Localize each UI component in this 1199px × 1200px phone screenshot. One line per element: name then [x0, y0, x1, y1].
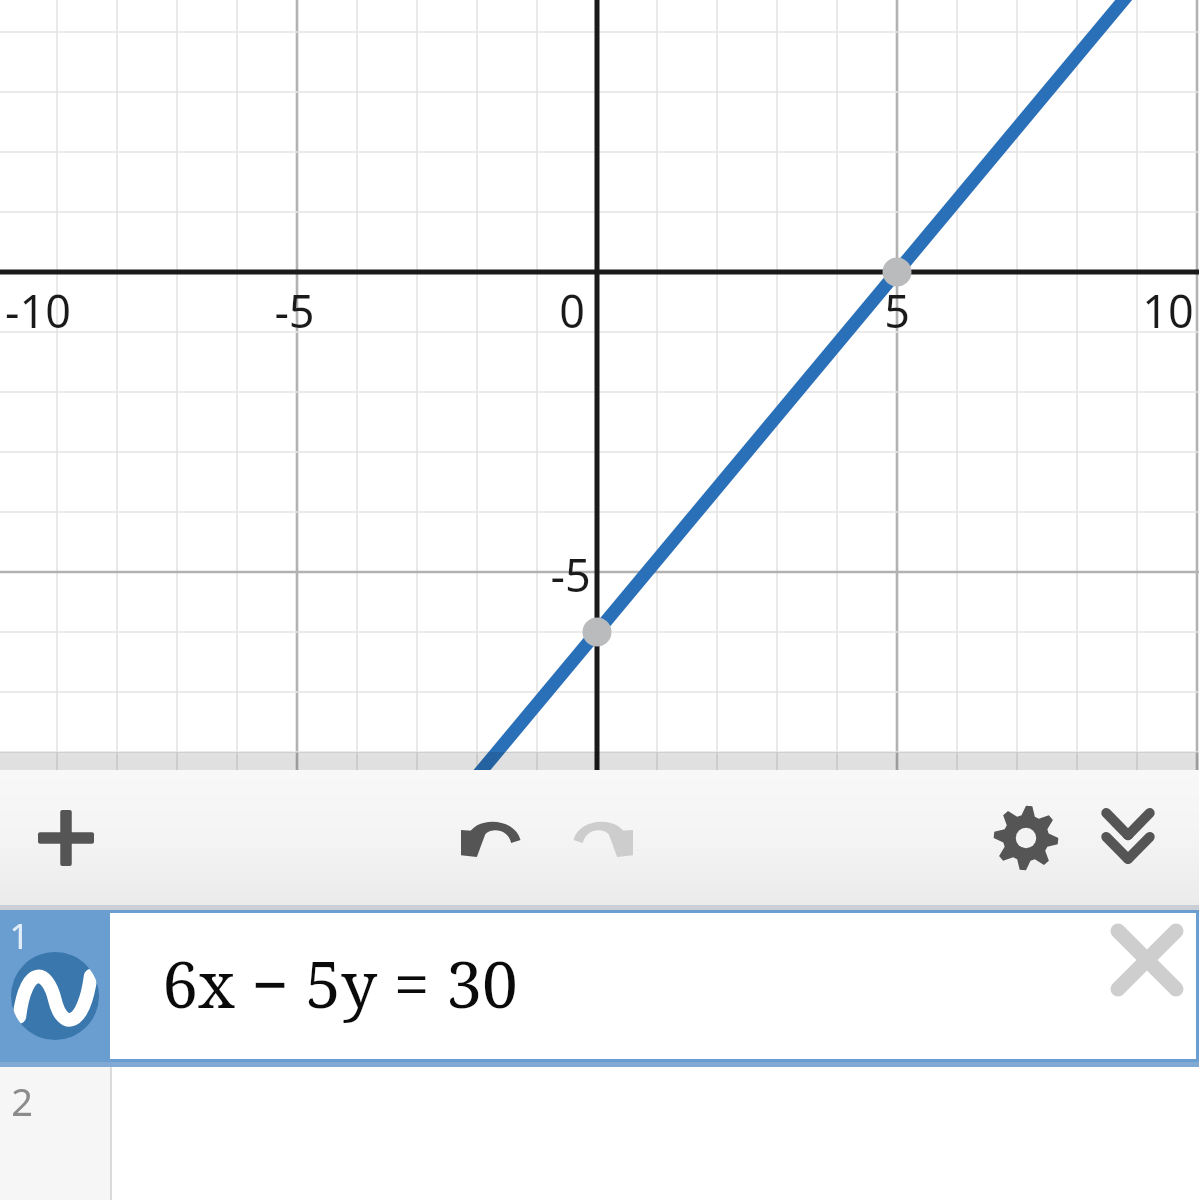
- staticText: 5: [884, 280, 910, 340]
- button[interactable]: 2: [0, 1067, 1199, 1200]
- button[interactable]: 1: [0, 910, 1199, 1062]
- staticText: -10: [5, 280, 71, 340]
- staticText: 1: [9, 912, 30, 960]
- button[interactable]: Redo: [550, 788, 650, 888]
- staticText: 2: [11, 1075, 33, 1127]
- button[interactable]: Collapse keypad: [1078, 788, 1178, 888]
- staticText: -5: [550, 544, 591, 604]
- staticText: 10: [1142, 280, 1194, 340]
- button[interactable]: Undo: [444, 788, 544, 888]
- button[interactable]: Settings: [976, 788, 1076, 888]
- button[interactable]: Delete expression: [1101, 914, 1193, 1006]
- staticText: 6x − 5y = 30: [162, 940, 518, 1027]
- staticText: 0: [559, 280, 585, 340]
- button[interactable]: Toggle graph visibility: [11, 952, 99, 1040]
- staticText: -5: [274, 280, 315, 340]
- button[interactable]: Add expression: [16, 788, 116, 888]
